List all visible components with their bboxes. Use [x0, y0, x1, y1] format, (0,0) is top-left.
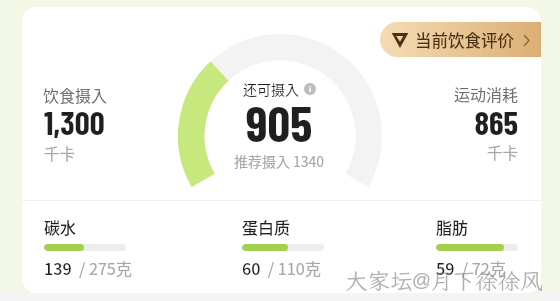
staticText: 千卡 — [322, 141, 518, 163]
staticText: 还可摄入 — [243, 79, 299, 99]
staticText: 当前饮食评价 — [415, 28, 514, 52]
staticText: 碳水 — [44, 215, 77, 238]
button[interactable]: 碳水 — [44, 207, 132, 287]
staticText: 865 — [322, 102, 518, 142]
staticText: 千卡 — [44, 142, 76, 164]
button[interactable]: 蛋白质 — [242, 207, 330, 287]
staticText: 59 / 72克 — [436, 256, 506, 279]
button[interactable]: More information — [304, 83, 316, 95]
staticText: 139 / 275克 — [44, 256, 132, 279]
staticText: 饮食摄入 — [43, 83, 108, 106]
staticText: 60 / 110克 — [242, 256, 321, 279]
staticText: 1,300 — [44, 102, 105, 142]
staticText: 905 — [179, 92, 379, 152]
staticText: 运动消耗 — [322, 82, 518, 105]
staticText: 蛋白质 — [242, 215, 291, 238]
button[interactable]: 脂肪 — [436, 207, 524, 287]
staticText: 大家坛@月下徐徐风 — [345, 266, 543, 296]
staticText: 脂肪 — [436, 215, 469, 238]
staticText: 推荐摄入 1340 — [179, 151, 379, 171]
button[interactable]: 当前饮食评价 — [380, 22, 541, 57]
